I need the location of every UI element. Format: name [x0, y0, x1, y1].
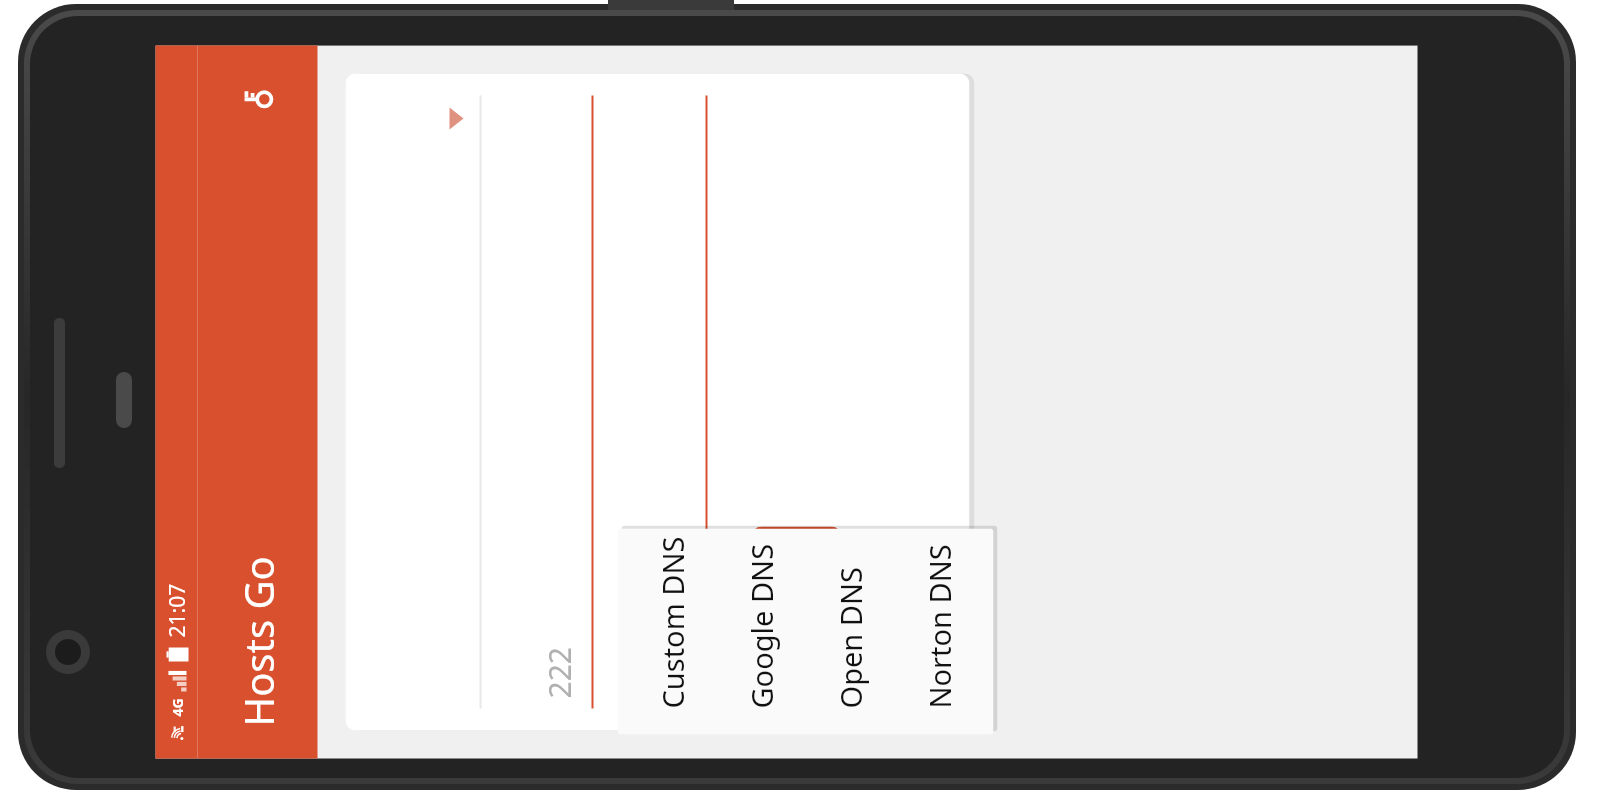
button[interactable]: 220	[623, 73, 707, 730]
staticText: 4G	[167, 697, 186, 716]
button[interactable]: Open DNS	[805, 528, 894, 734]
button[interactable]: Custom DNS	[627, 528, 716, 734]
button[interactable]: Google DNS	[716, 528, 805, 734]
button[interactable]	[397, 73, 481, 730]
staticText: Google DNS	[741, 543, 780, 708]
button[interactable]: SAVE	[751, 526, 841, 698]
button[interactable]: Norton DNS	[894, 528, 983, 734]
button[interactable]: 222	[509, 73, 593, 730]
button[interactable]: VPN key	[226, 61, 288, 123]
staticText: Hosts Go	[230, 555, 284, 726]
staticText: 220	[652, 646, 693, 698]
staticText: SAVE	[778, 580, 815, 644]
staticText: Open DNS	[830, 566, 869, 708]
staticText: 222	[538, 646, 579, 698]
staticText: Custom DNS	[652, 536, 691, 708]
staticText: 21:07	[162, 583, 191, 637]
staticText: Norton DNS	[919, 543, 958, 708]
